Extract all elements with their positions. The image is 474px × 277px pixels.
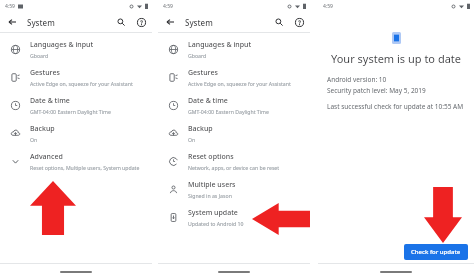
button[interactable]: Search	[114, 15, 128, 29]
staticText: Active Edge on, squeeze for your Assista…	[188, 80, 291, 87]
staticText: Backup	[30, 124, 55, 134]
button[interactable]: Advanced	[0, 147, 152, 175]
button[interactable]: Date & time	[158, 91, 310, 119]
staticText: Gboard	[30, 52, 49, 59]
button[interactable]: Back	[163, 15, 177, 29]
staticText: Android version: 10	[327, 75, 387, 84]
button[interactable]: Date & time	[0, 91, 152, 119]
staticText: Check for update	[411, 248, 461, 256]
button[interactable]: Languages & input	[0, 35, 152, 63]
staticText: Gestures	[30, 68, 60, 78]
button[interactable]: Search	[272, 15, 286, 29]
button[interactable]: Backup	[0, 119, 152, 147]
button[interactable]: Help	[134, 15, 148, 29]
staticText: Date & time	[30, 96, 70, 106]
staticText: Security patch level: May 5, 2019	[327, 86, 426, 95]
button[interactable]: Multiple users	[158, 175, 310, 203]
button[interactable]: Gestures	[0, 63, 152, 91]
button[interactable]: Reset options	[158, 147, 310, 175]
staticText: 4:59	[163, 3, 173, 10]
button[interactable]: Back	[5, 15, 19, 29]
staticText: Gestures	[188, 68, 218, 78]
staticText: Languages & input	[30, 40, 94, 50]
staticText: Advanced	[30, 152, 63, 162]
staticText: System update	[188, 208, 238, 218]
staticText: Multiple users	[188, 180, 236, 190]
staticText: Reset options	[188, 152, 234, 162]
staticText: Date & time	[188, 96, 228, 106]
staticText: 4:59	[5, 3, 15, 10]
staticText: Network, apps, or device can be reset	[188, 164, 280, 171]
staticText: Your system is up to date	[331, 51, 461, 66]
staticText: Last successful check for update at 10:5…	[327, 102, 464, 111]
button[interactable]: Backup	[158, 119, 310, 147]
button[interactable]: System update	[158, 203, 310, 231]
staticText: GMT-04:00 Eastern Daylight Time	[188, 108, 269, 115]
staticText: System	[185, 17, 213, 28]
button[interactable]: Help	[292, 15, 306, 29]
button[interactable]: Check for update	[404, 244, 468, 260]
staticText: Reset options, Multiple users, System up…	[30, 164, 140, 171]
staticText: On	[188, 136, 196, 143]
staticText: System	[27, 17, 55, 28]
staticText: Signed in as Jason	[188, 192, 232, 199]
staticText: Updated to Android 10	[188, 220, 244, 227]
button[interactable]: Languages & input	[158, 35, 310, 63]
staticText: GMT-04:00 Eastern Daylight Time	[30, 108, 111, 115]
staticText: Active Edge on, squeeze for your Assista…	[30, 80, 133, 87]
staticText: 4:59	[323, 3, 333, 10]
staticText: Languages & input	[188, 40, 252, 50]
staticText: On	[30, 136, 38, 143]
staticText: Backup	[188, 124, 213, 134]
staticText: Gboard	[188, 52, 207, 59]
button[interactable]: Gestures	[158, 63, 310, 91]
